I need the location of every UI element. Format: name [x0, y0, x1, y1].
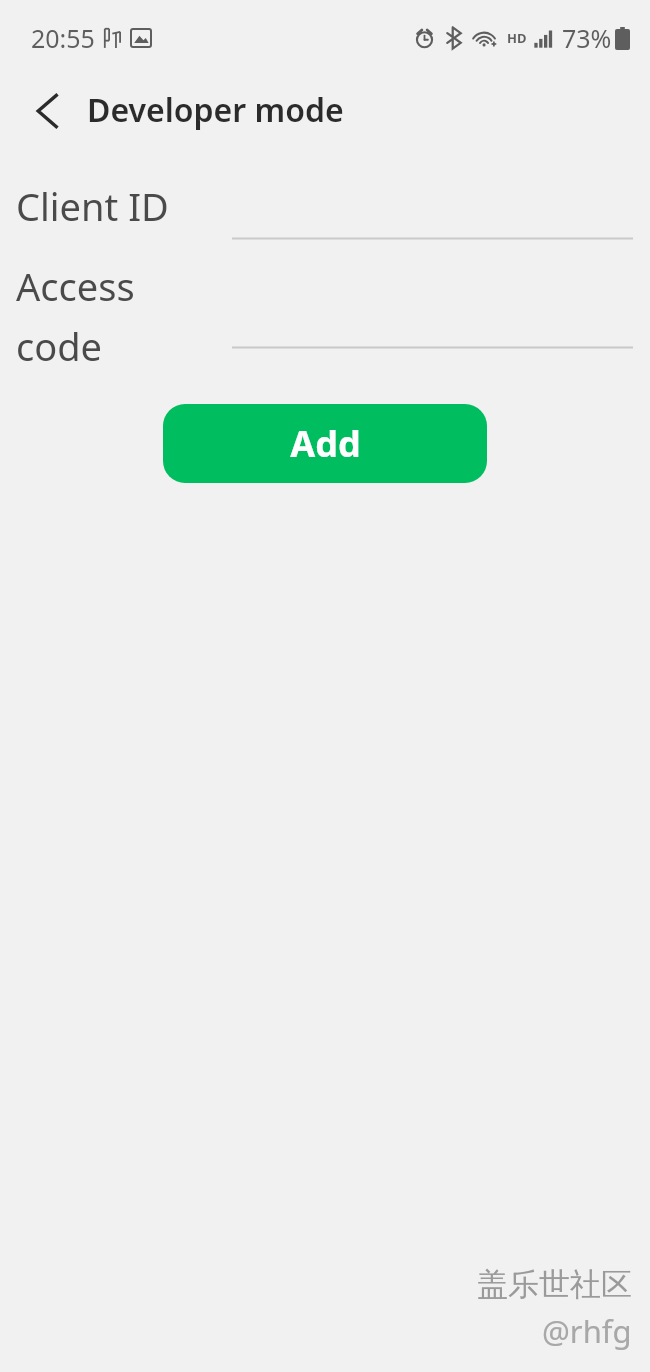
staticText: Developer mode: [87, 88, 344, 132]
button[interactable]: Back: [13, 77, 81, 145]
staticText: Add: [290, 419, 361, 468]
staticText: HD: [507, 29, 527, 47]
button[interactable]: Add: [163, 404, 487, 483]
button[interactable]: [232, 305, 633, 349]
staticText: 73%: [562, 21, 612, 55]
staticText: @rhfg: [542, 1310, 632, 1352]
staticText: Access code: [16, 260, 216, 372]
staticText: 20:55: [31, 21, 95, 55]
button[interactable]: [232, 196, 633, 240]
staticText: 盖乐世社区: [477, 1265, 632, 1304]
staticText: Client ID: [16, 180, 169, 232]
